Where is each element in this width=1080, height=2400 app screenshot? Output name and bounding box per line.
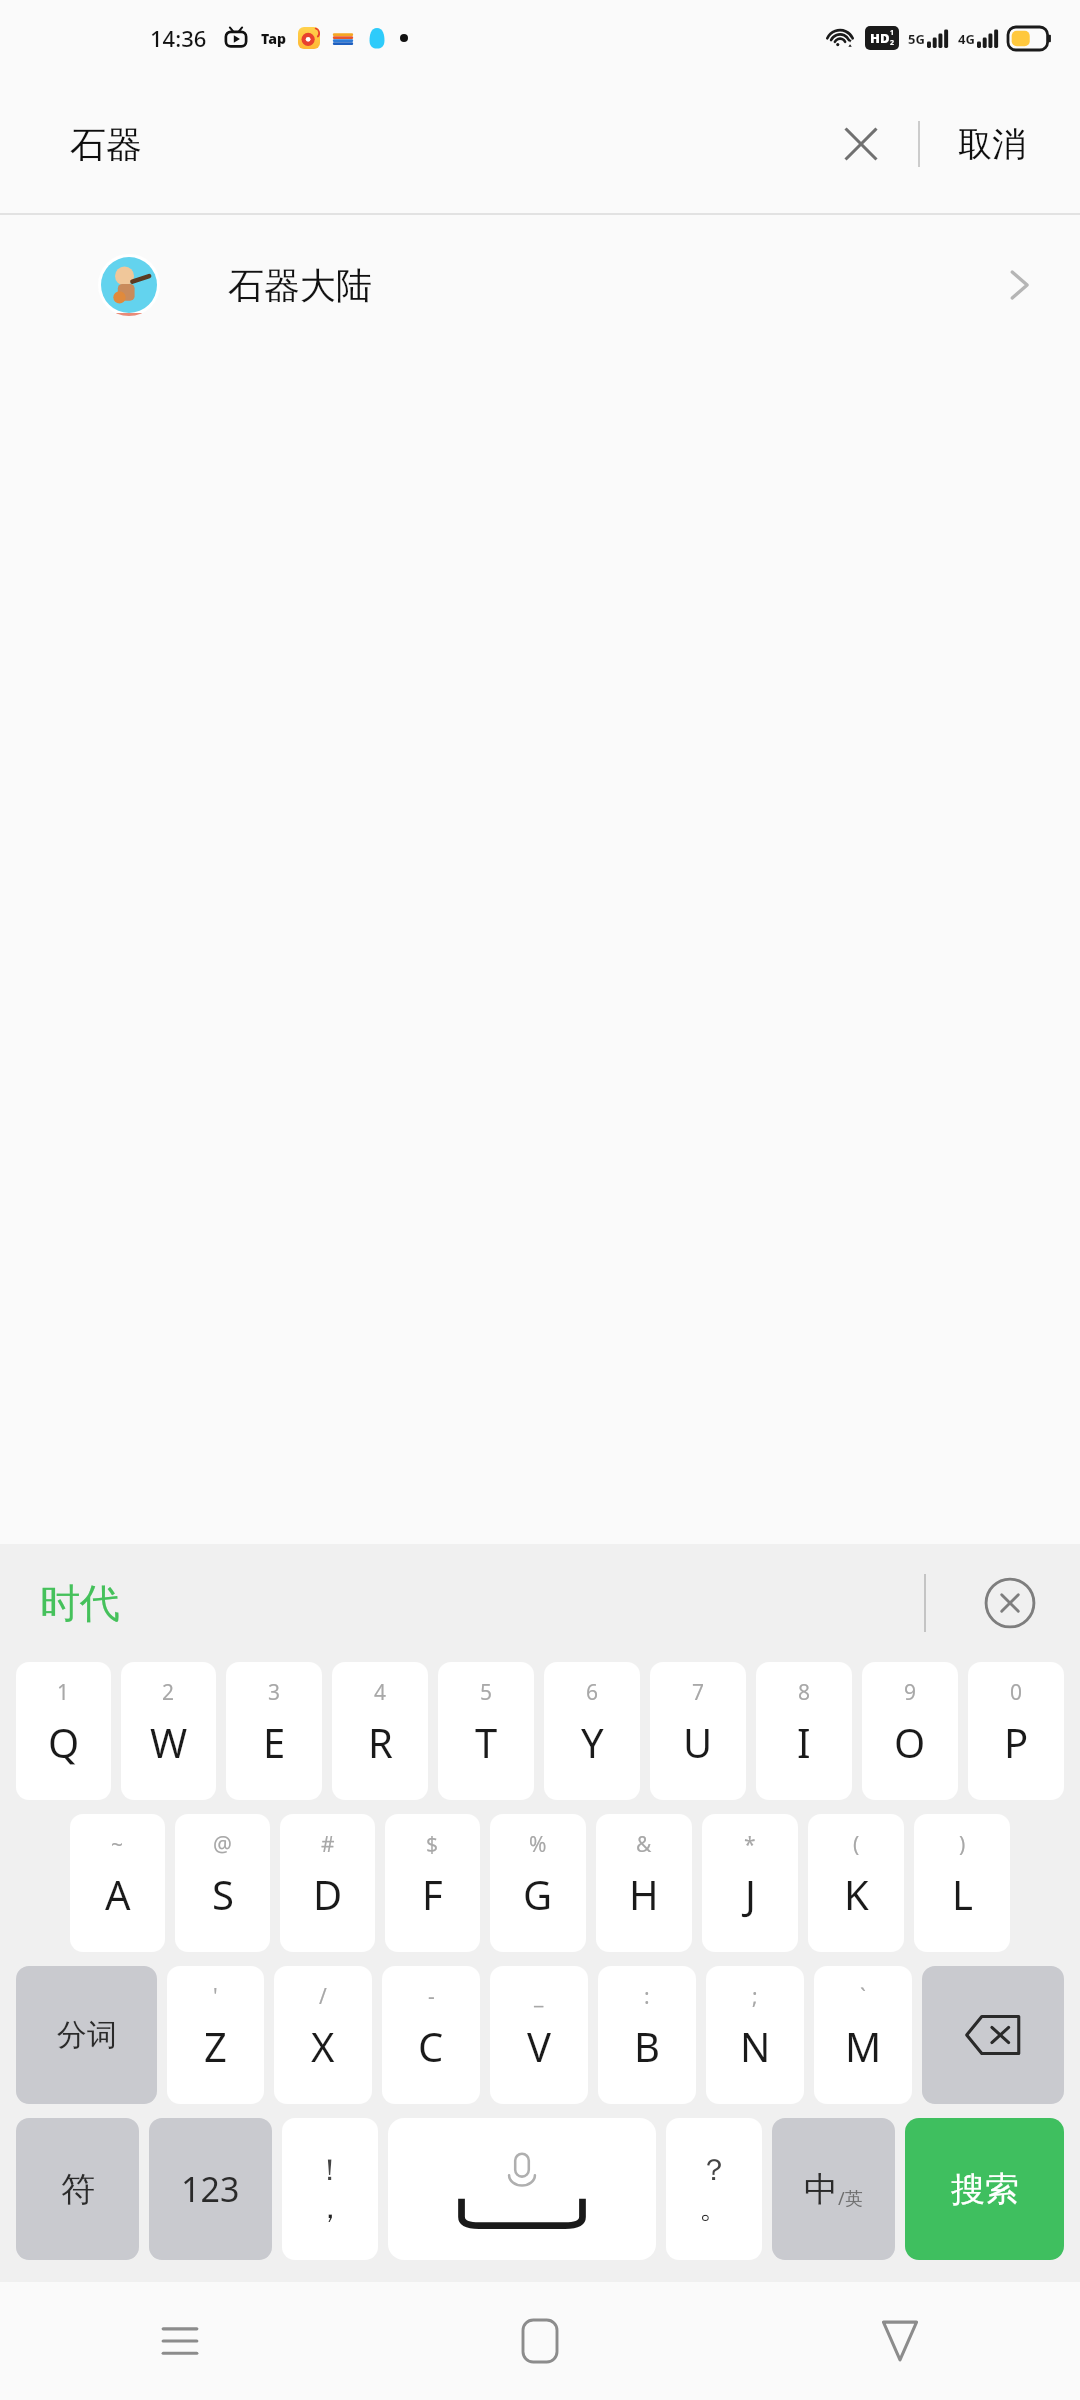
staticText: K xyxy=(844,1867,869,1921)
staticText: ) xyxy=(959,1830,966,1859)
staticText: 取消 xyxy=(958,123,1026,166)
button[interactable]: ！ xyxy=(282,2118,378,2260)
staticText: ; xyxy=(752,1982,758,2011)
button[interactable]: 9 xyxy=(862,1662,958,1800)
button[interactable]: ' xyxy=(167,1966,264,2104)
button[interactable]: Recent apps xyxy=(0,2282,360,2400)
staticText: 石器大陆 xyxy=(228,263,372,308)
button[interactable]: 8 xyxy=(756,1662,852,1800)
button[interactable]: 7 xyxy=(650,1662,746,1800)
staticText: 5G xyxy=(908,30,925,48)
staticText: J xyxy=(745,1867,756,1921)
staticText: U xyxy=(683,1715,713,1769)
staticText: ！ xyxy=(315,2151,345,2189)
staticText: 123 xyxy=(181,2166,240,2212)
button[interactable]: 时代 xyxy=(34,1566,126,1640)
button[interactable]: 1 xyxy=(16,1662,111,1800)
staticText: 9 xyxy=(904,1678,917,1707)
staticText: B xyxy=(634,2019,660,2073)
staticText: Tap xyxy=(261,29,286,48)
staticText: ( xyxy=(853,1830,860,1859)
button[interactable]: _ xyxy=(490,1966,588,2104)
button[interactable]: % xyxy=(490,1814,586,1952)
staticText: P xyxy=(1004,1715,1029,1769)
staticText: 分词 xyxy=(57,2016,117,2054)
button[interactable]: 搜索 xyxy=(905,2118,1064,2260)
staticText: 8 xyxy=(798,1678,811,1707)
button[interactable]: 取消 xyxy=(950,103,1034,186)
button[interactable]: 3 xyxy=(226,1662,322,1800)
staticText: Q xyxy=(48,1715,80,1769)
staticText: 符 xyxy=(61,2168,95,2211)
staticText: Z xyxy=(204,2019,227,2073)
button[interactable]: ？ xyxy=(666,2118,762,2260)
staticText: 5 xyxy=(480,1678,493,1707)
staticText: 石器 xyxy=(70,122,142,167)
staticText: 搜索 xyxy=(951,2168,1019,2211)
staticText: ~ xyxy=(111,1830,124,1859)
staticText: 6 xyxy=(586,1678,599,1707)
staticText: R xyxy=(368,1715,393,1769)
staticText: 时代 xyxy=(40,1578,120,1628)
staticText: 。 xyxy=(699,2189,729,2227)
staticText: N xyxy=(740,2019,771,2073)
staticText: V xyxy=(527,2019,551,2073)
staticText: L xyxy=(952,1867,973,1921)
button[interactable]: 符 xyxy=(16,2118,139,2260)
button[interactable]: 0 xyxy=(968,1662,1064,1800)
button[interactable]: @ xyxy=(175,1814,270,1952)
button[interactable]: ` xyxy=(814,1966,912,2104)
button[interactable]: Clear xyxy=(818,101,904,187)
staticText: X xyxy=(311,2019,335,2073)
staticText: 3 xyxy=(268,1678,281,1707)
other: Open xyxy=(1002,268,1036,302)
button[interactable]: Home xyxy=(360,2282,720,2400)
button[interactable]: 4 xyxy=(332,1662,428,1800)
staticText: 14:36 xyxy=(150,23,207,53)
staticText: /英 xyxy=(838,2186,863,2211)
staticText: I xyxy=(797,1715,811,1769)
button[interactable]: ( xyxy=(808,1814,904,1952)
button[interactable]: 中 xyxy=(772,2118,895,2260)
button[interactable]: : xyxy=(598,1966,696,2104)
staticText: : xyxy=(644,1982,650,2011)
staticText: G xyxy=(523,1867,553,1921)
button[interactable]: * xyxy=(702,1814,798,1952)
button[interactable]: ; xyxy=(706,1966,804,2104)
staticText: 2 xyxy=(890,38,895,48)
staticText: 1 xyxy=(890,28,895,38)
staticText: 1 xyxy=(57,1678,70,1707)
button[interactable]: 6 xyxy=(544,1662,640,1800)
staticText: W xyxy=(150,1715,188,1769)
button[interactable]: / xyxy=(274,1966,372,2104)
button[interactable]: 2 xyxy=(121,1662,216,1800)
staticText: 0 xyxy=(1010,1678,1023,1707)
button[interactable]: ) xyxy=(914,1814,1010,1952)
button[interactable]: Space / Voice input xyxy=(388,2118,656,2260)
staticText: Y xyxy=(581,1715,604,1769)
staticText: H xyxy=(629,1867,659,1921)
button[interactable]: Close keyboard xyxy=(974,1567,1046,1639)
button[interactable]: Backspace xyxy=(922,1966,1064,2104)
button[interactable]: $ xyxy=(385,1814,480,1952)
button[interactable]: 石器大陆 xyxy=(0,215,1080,355)
button[interactable]: ~ xyxy=(70,1814,165,1952)
staticText: E xyxy=(263,1715,286,1769)
staticText: & xyxy=(636,1830,652,1859)
staticText: M xyxy=(845,2019,882,2073)
button[interactable]: - xyxy=(382,1966,480,2104)
staticText: _ xyxy=(534,1982,544,2011)
staticText: 2 xyxy=(162,1678,175,1707)
button[interactable]: 分词 xyxy=(16,1966,157,2104)
button[interactable]: 123 xyxy=(149,2118,272,2260)
button[interactable]: 5 xyxy=(438,1662,534,1800)
button[interactable]: & xyxy=(596,1814,692,1952)
staticText: C xyxy=(418,2019,444,2073)
staticText: S xyxy=(212,1867,234,1921)
staticText: ， xyxy=(315,2189,345,2227)
staticText: D xyxy=(313,1867,343,1921)
staticText: HD xyxy=(870,29,890,47)
button[interactable]: # xyxy=(280,1814,375,1952)
staticText: 7 xyxy=(692,1678,705,1707)
button[interactable]: Back xyxy=(720,2282,1080,2400)
